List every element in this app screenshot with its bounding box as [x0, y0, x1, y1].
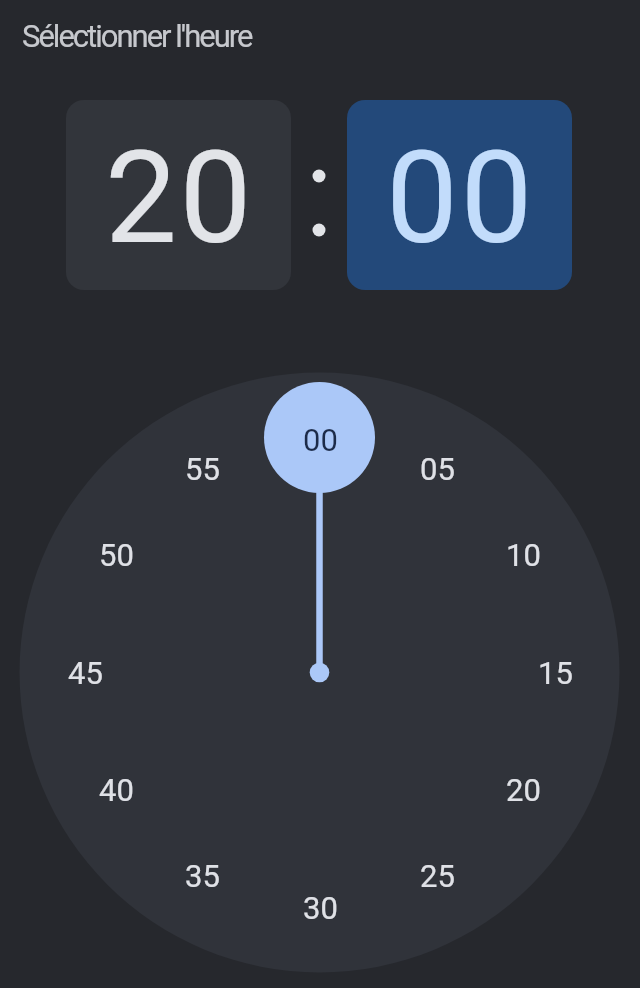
- button[interactable]: 55: [162, 445, 242, 493]
- button[interactable]: 50: [76, 531, 156, 579]
- staticText: 55: [185, 451, 220, 487]
- staticText: 20: [105, 123, 254, 273]
- staticText: 10: [506, 537, 541, 573]
- button[interactable]: 30: [280, 884, 360, 932]
- button[interactable]: 05: [397, 445, 477, 493]
- button[interactable]: 35: [162, 852, 242, 900]
- staticText: 45: [68, 655, 103, 691]
- staticText: 50: [99, 537, 134, 573]
- button[interactable]: 00: [280, 416, 360, 464]
- staticText: 30: [303, 890, 338, 926]
- staticText: 00: [386, 123, 535, 273]
- button[interactable]: 20: [66, 100, 291, 290]
- staticText: 25: [420, 858, 455, 894]
- button[interactable]: 15: [515, 649, 595, 697]
- staticText: 05: [420, 451, 455, 487]
- staticText: 00: [303, 422, 338, 458]
- button[interactable]: 20: [483, 766, 563, 814]
- staticText: 35: [185, 858, 220, 894]
- button[interactable]: 00: [347, 100, 572, 290]
- button[interactable]: 10: [483, 531, 563, 579]
- button[interactable]: 25: [397, 852, 477, 900]
- staticText: Sélectionner l'heure: [22, 18, 252, 54]
- staticText: 40: [99, 772, 134, 808]
- button[interactable]: 40: [76, 766, 156, 814]
- button[interactable]: 45: [45, 649, 125, 697]
- staticText: 15: [538, 655, 573, 691]
- staticText: 20: [506, 772, 541, 808]
